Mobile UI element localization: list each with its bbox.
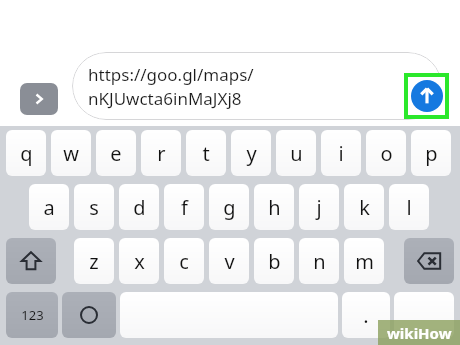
staticText: h bbox=[268, 194, 281, 221]
staticText: n bbox=[313, 248, 326, 275]
button[interactable]: f bbox=[164, 184, 204, 230]
staticText: t bbox=[202, 140, 210, 167]
button[interactable]: . bbox=[342, 292, 390, 338]
button[interactable]: q bbox=[6, 130, 46, 176]
staticText: i bbox=[338, 140, 344, 167]
staticText: q bbox=[20, 140, 33, 167]
button[interactable]: w bbox=[51, 130, 91, 176]
button[interactable]: Send bbox=[404, 73, 449, 119]
staticText: w bbox=[63, 140, 79, 167]
staticText: y bbox=[246, 140, 257, 167]
button[interactable]: s bbox=[74, 184, 114, 230]
button[interactable]: j bbox=[299, 184, 339, 230]
button[interactable]: Backspace bbox=[404, 238, 454, 284]
staticText: s bbox=[89, 194, 99, 221]
staticText: b bbox=[268, 248, 281, 275]
staticText: v bbox=[224, 248, 235, 275]
button[interactable]: g bbox=[209, 184, 249, 230]
button[interactable]: y bbox=[231, 130, 271, 176]
staticText: m bbox=[355, 248, 374, 275]
button[interactable]: a bbox=[29, 184, 69, 230]
staticText: g bbox=[223, 194, 236, 221]
button[interactable] bbox=[72, 52, 442, 120]
button[interactable]: Shift bbox=[6, 238, 56, 284]
staticText: a bbox=[43, 194, 55, 221]
button[interactable]: z bbox=[74, 238, 114, 284]
button[interactable]: u bbox=[276, 130, 316, 176]
button[interactable]: o bbox=[366, 130, 406, 176]
button[interactable]: l bbox=[389, 184, 429, 230]
staticText: z bbox=[89, 248, 99, 275]
button[interactable]: Space bbox=[120, 292, 338, 338]
staticText: c bbox=[179, 248, 189, 275]
button[interactable]: r bbox=[141, 130, 181, 176]
button[interactable]: e bbox=[96, 130, 136, 176]
button[interactable]: v bbox=[209, 238, 249, 284]
staticText: x bbox=[134, 248, 145, 275]
button[interactable]: c bbox=[164, 238, 204, 284]
button[interactable]: m bbox=[344, 238, 384, 284]
staticText: e bbox=[110, 140, 122, 167]
button[interactable]: n bbox=[299, 238, 339, 284]
button[interactable]: d bbox=[119, 184, 159, 230]
button[interactable]: Emoji bbox=[62, 292, 116, 338]
button[interactable]: Expand options bbox=[20, 83, 58, 115]
staticText: https://goo.gl/maps/ nKJUwcta6inMaJXj8 bbox=[88, 63, 254, 110]
button[interactable]: wikiHow bbox=[378, 320, 460, 345]
staticText: wikiHow bbox=[387, 323, 452, 343]
button[interactable]: i bbox=[321, 130, 361, 176]
staticText: l bbox=[406, 194, 412, 221]
staticText: o bbox=[380, 140, 393, 167]
staticText: k bbox=[359, 194, 370, 221]
staticText: f bbox=[181, 194, 188, 221]
button[interactable]: Return bbox=[394, 292, 454, 338]
button[interactable]: k bbox=[344, 184, 384, 230]
button[interactable]: b bbox=[254, 238, 294, 284]
button[interactable]: h bbox=[254, 184, 294, 230]
button[interactable]: t bbox=[186, 130, 226, 176]
staticText: . bbox=[363, 302, 369, 329]
button[interactable]: x bbox=[119, 238, 159, 284]
staticText: r bbox=[157, 140, 166, 167]
staticText: u bbox=[290, 140, 303, 167]
button[interactable]: p bbox=[411, 130, 451, 176]
button[interactable]: 123 bbox=[6, 292, 58, 338]
staticText: d bbox=[133, 194, 146, 221]
staticText: 123 bbox=[21, 306, 44, 324]
staticText: p bbox=[425, 140, 438, 167]
staticText: j bbox=[316, 194, 322, 221]
